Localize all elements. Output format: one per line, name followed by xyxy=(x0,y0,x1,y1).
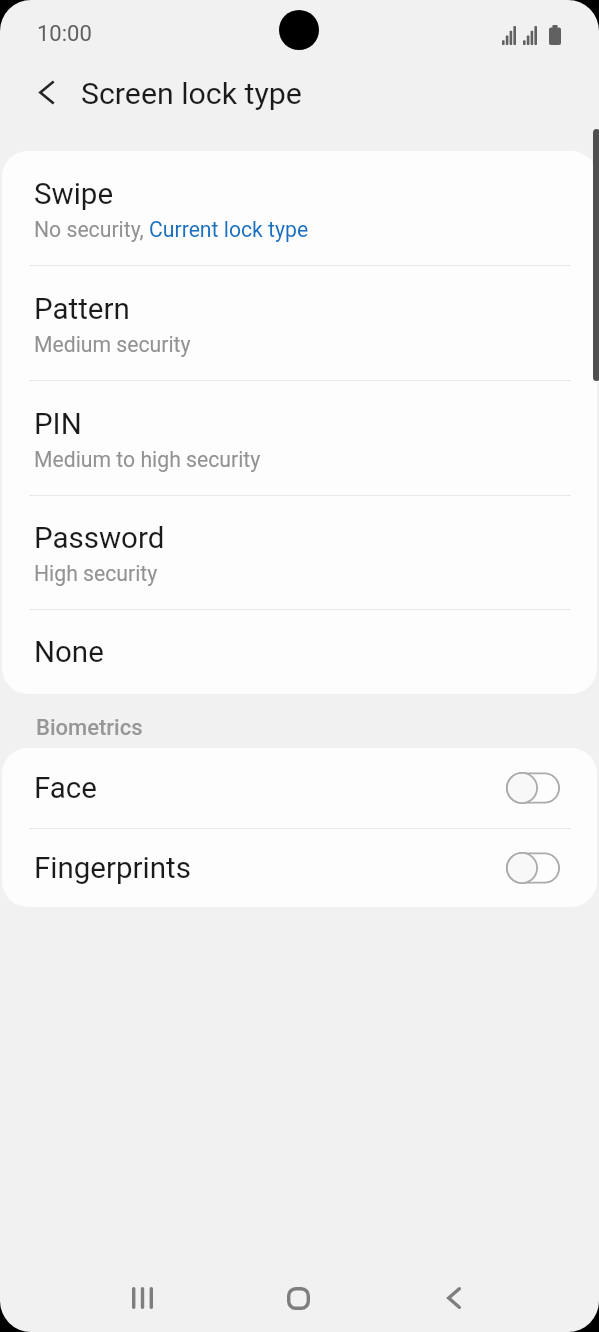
staticText: Biometrics xyxy=(36,715,143,741)
button[interactable]: Back xyxy=(20,68,72,120)
staticText: 10:00 xyxy=(37,21,92,47)
button[interactable]: Swipe xyxy=(2,151,597,265)
staticText: Fingerprints xyxy=(34,851,191,886)
staticText: Password xyxy=(34,521,165,556)
staticText: Face xyxy=(34,771,97,806)
button[interactable]: Face xyxy=(2,748,597,828)
button[interactable]: PIN xyxy=(2,381,597,495)
staticText: None xyxy=(34,635,104,670)
staticText: PIN xyxy=(34,407,82,442)
staticText: No security, Current lock type xyxy=(34,217,309,242)
staticText: Medium to high security xyxy=(34,447,261,472)
staticText: Screen lock type xyxy=(81,76,302,112)
staticText: Pattern xyxy=(34,292,130,327)
button[interactable]: Pattern xyxy=(2,266,597,380)
button[interactable]: Password xyxy=(2,496,597,609)
button[interactable]: Recent apps xyxy=(94,1263,190,1332)
staticText: Medium security xyxy=(34,332,191,357)
button[interactable]: None xyxy=(2,610,597,694)
button[interactable]: Fingerprints xyxy=(2,829,597,907)
staticText: High security xyxy=(34,561,158,586)
button[interactable]: Home xyxy=(250,1263,346,1332)
staticText: Swipe xyxy=(34,177,114,212)
button[interactable]: Back xyxy=(406,1263,502,1332)
